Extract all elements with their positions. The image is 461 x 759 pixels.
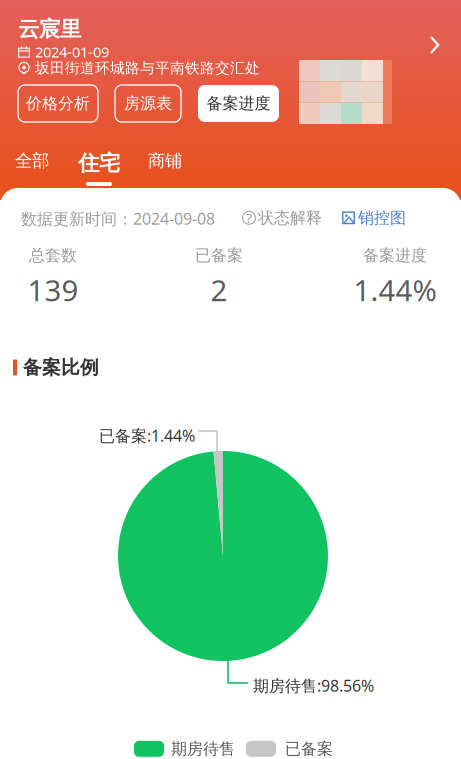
staticText: ? — [246, 209, 252, 227]
staticText: 备案进度 — [363, 246, 427, 265]
button[interactable]: 商铺 — [139, 150, 190, 186]
staticText: 已备案:1.44% — [99, 425, 195, 446]
staticText: 坂田街道环城路与平南铁路交汇处 — [35, 59, 260, 77]
staticText: 2024-01-09 — [35, 42, 109, 61]
staticText: 商铺 — [148, 150, 182, 171]
staticText: 价格分析 — [26, 94, 90, 113]
staticText: 状态解释 — [258, 208, 322, 228]
staticText: 数据更新时间：2024-09-08 — [21, 208, 215, 229]
staticText: 已备案 — [195, 246, 243, 265]
staticText: 2 — [210, 270, 227, 309]
staticText: 期房待售:98.56% — [253, 675, 374, 696]
staticText: 已备案 — [285, 739, 333, 759]
staticText: 云宸里 — [18, 16, 81, 42]
staticText: 总套数 — [29, 246, 77, 265]
staticText: 备案比例 — [23, 356, 99, 379]
staticText: 备案进度 — [206, 94, 270, 113]
staticText: 住宅 — [78, 150, 120, 176]
button[interactable]: 备案进度 — [198, 85, 279, 122]
staticText: 销控图 — [358, 208, 406, 228]
button[interactable]: 房源表 — [115, 85, 181, 122]
staticText: 期房待售 — [171, 739, 235, 759]
button[interactable]: 价格分析 — [18, 85, 98, 122]
button[interactable]: 住宅 — [72, 150, 125, 186]
staticText: 139 — [27, 270, 78, 309]
staticText: 1.44% — [353, 270, 436, 309]
button[interactable]: 详情 — [417, 28, 451, 62]
button[interactable]: 全部 — [6, 150, 57, 186]
button[interactable]: ? — [242, 205, 322, 231]
button[interactable]: 销控图 — [342, 205, 406, 231]
staticText: 全部 — [15, 150, 49, 171]
staticText: 房源表 — [124, 94, 172, 113]
